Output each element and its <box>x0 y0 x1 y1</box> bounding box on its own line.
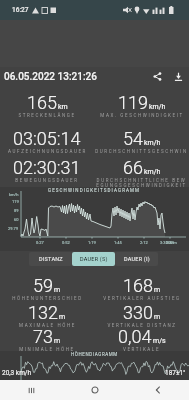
staticText: m <box>154 313 161 321</box>
staticText: 16:27 <box>12 6 29 14</box>
staticText: DISTANZ <box>39 256 63 262</box>
staticText: 1:45 <box>114 240 122 245</box>
staticText: STRECKENLÄNGE <box>18 113 76 118</box>
staticText: 60 <box>14 217 19 222</box>
staticText: 3:3556 m <box>160 240 177 245</box>
staticText: BEWEGUNGSDAUER <box>15 178 79 183</box>
staticText: 165 <box>27 92 57 113</box>
staticText: VERTIKALE GESCHWINDIGKEIT <box>95 347 188 352</box>
staticText: HÖHENDIAGRAMM <box>71 352 118 357</box>
staticText: 132 <box>28 302 58 323</box>
staticText: m <box>154 286 161 294</box>
staticText: 02:30:31 <box>13 157 81 178</box>
staticText: 59 <box>33 275 53 296</box>
staticText: 0:52 <box>62 240 70 245</box>
button[interactable]: Recent apps <box>0 380 63 400</box>
staticText: km/h <box>144 168 161 176</box>
staticText: 20,3 km/h <box>2 369 32 377</box>
staticText: 73 <box>33 326 53 347</box>
button[interactable]: Share <box>149 68 166 85</box>
staticText: VERTIKALE DISTANZ <box>107 323 177 328</box>
button[interactable]: DISTANZ <box>29 252 72 266</box>
staticText: 66 <box>123 157 143 178</box>
staticText: m/s <box>153 337 166 345</box>
staticText: VERTIKALER AUFSTIEG <box>103 296 181 301</box>
staticText: GESCHWINDIGKEITSDIAGRAMM <box>48 188 141 193</box>
staticText: DAUER (I) <box>124 256 150 262</box>
button[interactable]: DAUER (I) <box>115 252 158 266</box>
staticText: 0:27 <box>36 240 44 245</box>
staticText: HÖHENUNTERSCHIED <box>12 296 83 301</box>
button[interactable]: DAUER (S) <box>72 252 115 266</box>
button[interactable]: Download <box>170 68 187 85</box>
staticText: 03:05:14 <box>13 128 81 149</box>
staticText: MAXIMALE HÖHE <box>19 323 76 328</box>
button[interactable]: Home <box>63 380 126 400</box>
staticText: AUFZEICHNUNGSDAUER <box>8 149 87 154</box>
staticText: 119 <box>118 92 148 113</box>
staticText: 2:12 <box>140 240 148 245</box>
staticText: DURCHSCHNITTSGESCHWINDIGKEIT <box>95 149 188 154</box>
staticText: 0,04 <box>118 326 152 347</box>
staticText: DAUER (S) <box>80 256 108 262</box>
staticText: 1:19 <box>88 240 96 245</box>
staticText: km/h <box>149 103 166 111</box>
staticText: 119 <box>12 199 19 204</box>
staticText: MINIMALE HÖHE <box>19 347 75 352</box>
staticText: m <box>54 337 61 345</box>
staticText: m <box>59 313 66 321</box>
staticText: 54 <box>123 128 143 149</box>
staticText: 187±1° <box>165 369 186 377</box>
staticText: 168 <box>123 275 153 296</box>
staticText: 89 <box>14 208 19 213</box>
staticText: 2:38 <box>166 240 174 245</box>
staticText: 29.79 <box>8 226 19 231</box>
staticText: km/h <box>144 139 161 147</box>
staticText: km <box>58 103 68 111</box>
staticText: 330 <box>123 302 153 323</box>
staticText: MAX. GESCHWINDIGKEIT <box>100 113 184 118</box>
staticText: 06.05.2022 13:21:26 <box>4 71 97 83</box>
staticText: m <box>54 286 61 294</box>
staticText: km/h <box>9 192 19 197</box>
staticText: DURCHSCHNITTLICHE BEWEGUNGSGESCHWINDIGKE… <box>95 178 188 188</box>
button[interactable]: Back <box>126 380 189 400</box>
